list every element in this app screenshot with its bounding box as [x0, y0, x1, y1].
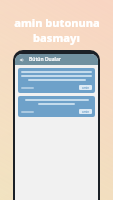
button[interactable]: amin [79, 85, 92, 90]
staticText: amin [82, 110, 90, 114]
staticText: Bütün Dualar [29, 56, 61, 63]
button[interactable]: amin [18, 68, 95, 93]
staticText: amin [82, 86, 90, 90]
button[interactable]: amin [18, 96, 95, 117]
button[interactable]: Back [18, 56, 25, 63]
button[interactable]: amin [79, 109, 92, 114]
staticText: amin butonuna [14, 15, 100, 30]
staticText: basmayı unutmayın [3, 30, 110, 60]
